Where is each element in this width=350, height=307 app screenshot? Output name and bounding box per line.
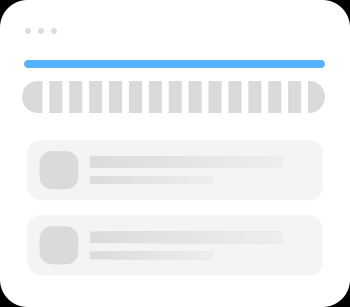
button[interactable]: Loading item (27, 215, 323, 275)
button[interactable]: More options (25, 28, 57, 34)
button[interactable]: Loading item (27, 140, 323, 200)
